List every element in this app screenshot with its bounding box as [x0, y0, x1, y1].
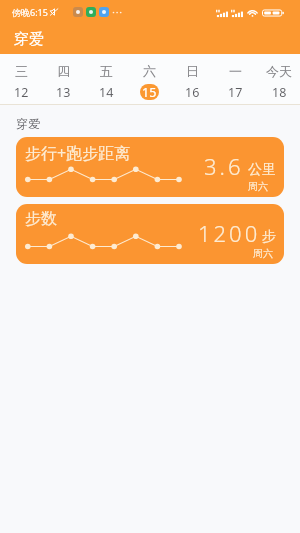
staticText: 14	[99, 84, 114, 100]
staticText: 15	[142, 84, 157, 100]
staticText: 傍晚6:15	[12, 6, 48, 18]
button[interactable]: 六	[128, 54, 171, 104]
button[interactable]: 五	[85, 54, 128, 104]
button[interactable]: 步数	[16, 204, 284, 264]
staticText: 13	[56, 84, 71, 100]
staticText: 一	[229, 63, 242, 79]
staticText: 四	[57, 63, 70, 79]
staticText: 3.6	[204, 151, 244, 181]
staticText: 17	[228, 84, 243, 100]
button[interactable]: 步行+跑步距离	[16, 137, 284, 197]
staticText: 五	[100, 63, 113, 79]
staticText: 周六	[248, 180, 268, 193]
button[interactable]: 今天	[257, 54, 300, 104]
staticText: 周六	[253, 247, 273, 260]
staticText: 穿爱	[16, 116, 40, 131]
button[interactable]: 日	[171, 54, 214, 104]
other: Silent mode	[49, 7, 59, 17]
button[interactable]: 四	[42, 54, 85, 104]
button[interactable]: 一	[214, 54, 257, 104]
staticText: 1200	[198, 218, 261, 248]
staticText: 三	[15, 63, 28, 79]
staticText: 16	[185, 84, 200, 100]
staticText: 12	[14, 84, 29, 100]
staticText: 18	[272, 84, 287, 100]
button[interactable]: 三	[0, 54, 42, 104]
staticText: 步	[262, 228, 276, 246]
staticText: 步行+跑步距离	[25, 142, 131, 164]
staticText: 日	[186, 63, 199, 79]
staticText: 今天	[266, 63, 292, 79]
staticText: 步数	[25, 209, 57, 229]
staticText: 穿爱	[14, 30, 44, 49]
staticText: 六	[143, 63, 156, 79]
staticText: 公里	[248, 161, 276, 179]
